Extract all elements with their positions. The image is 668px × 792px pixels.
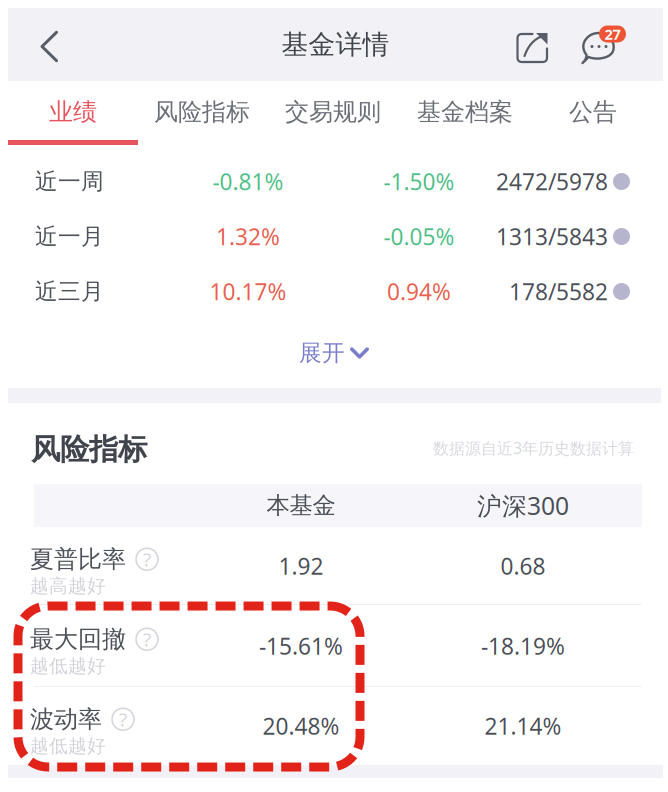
staticText: 越低越好 [30, 654, 106, 678]
staticText: 风险指标 [31, 431, 147, 468]
staticText: -0.81% [212, 166, 283, 197]
staticText: 业绩 [49, 97, 97, 127]
staticText: 1.32% [216, 221, 280, 252]
staticText: 21.14% [484, 711, 561, 741]
staticText: 公告 [569, 97, 617, 127]
button[interactable]: 展开 [0, 328, 668, 378]
staticText: ? [143, 626, 151, 652]
button[interactable]: Back [24, 12, 74, 80]
staticText: 越高越好 [30, 574, 106, 598]
staticText: 1313/5843 [496, 221, 608, 252]
staticText: 近一月 [35, 222, 104, 251]
staticText: 越低越好 [30, 734, 106, 758]
button[interactable]: 近三月 [0, 264, 668, 319]
staticText: 178/5582 [509, 276, 608, 307]
staticText: 近一周 [35, 167, 104, 196]
staticText: -15.61% [259, 631, 343, 661]
staticText: ? [143, 546, 151, 572]
staticText: 波动率 [30, 704, 102, 734]
staticText: 交易规则 [285, 97, 381, 127]
staticText: 夏普比率 [30, 544, 126, 574]
staticText: 沪深300 [477, 489, 569, 522]
button[interactable]: 近一周 [0, 154, 668, 209]
staticText: 0.68 [500, 551, 545, 581]
staticText: 27 [604, 24, 620, 44]
staticText: -1.50% [383, 166, 454, 197]
staticText: 20.48% [262, 711, 339, 741]
button[interactable]: 基金档案 [405, 86, 525, 138]
button[interactable]: 交易规则 [273, 86, 393, 138]
staticText: 2472/5978 [496, 166, 608, 197]
staticText: 展开 [299, 339, 345, 367]
staticText: -18.19% [481, 631, 565, 661]
button[interactable]: 风险指标 [142, 86, 262, 138]
button[interactable]: 业绩 [13, 86, 133, 138]
staticText: 本基金 [266, 491, 335, 520]
staticText: 1.92 [278, 551, 323, 581]
button[interactable]: 公告 [533, 86, 653, 138]
staticText: 0.94% [387, 276, 451, 307]
button[interactable]: Customer service messages [567, 20, 631, 74]
button[interactable]: 近一月 [0, 209, 668, 264]
staticText: 10.17% [209, 276, 286, 307]
staticText: 风险指标 [154, 97, 250, 127]
staticText: 近三月 [35, 277, 104, 306]
staticText: 数据源自近3年历史数据计算 [433, 437, 634, 459]
staticText: 基金档案 [417, 97, 513, 127]
staticText: ? [119, 706, 127, 732]
button[interactable]: Share [506, 22, 559, 75]
staticText: -0.05% [383, 221, 454, 252]
staticText: 基金详情 [281, 28, 389, 61]
staticText: 最大回撤 [30, 624, 126, 654]
